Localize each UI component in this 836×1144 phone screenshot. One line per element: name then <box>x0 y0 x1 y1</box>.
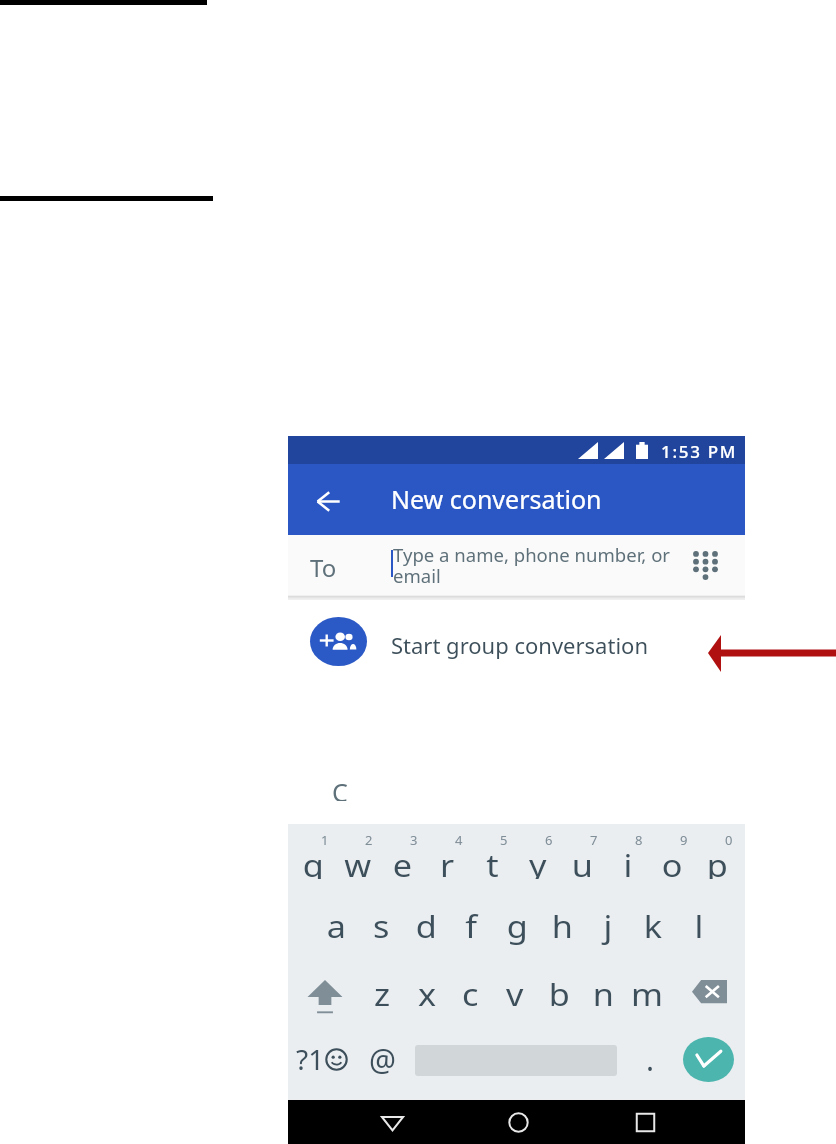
staticText: c <box>462 974 479 1015</box>
button[interactable]: ?1 <box>296 1028 356 1090</box>
button[interactable]: Dialpad <box>684 544 727 587</box>
button[interactable]: x <box>404 961 449 1027</box>
staticText: v <box>506 974 524 1015</box>
button[interactable]: h <box>540 893 585 959</box>
staticText: New conversation <box>391 482 602 516</box>
button[interactable]: 6 <box>515 828 560 890</box>
button[interactable]: @ <box>362 1028 402 1090</box>
staticText: 5 <box>500 831 508 849</box>
button[interactable]: Recents <box>629 1106 661 1138</box>
button[interactable]: c <box>448 961 493 1027</box>
staticText: g <box>507 906 528 947</box>
button[interactable]: s <box>359 893 404 959</box>
button[interactable]: 0 <box>695 828 740 890</box>
button[interactable]: 1 <box>291 828 336 890</box>
staticText: 1 <box>321 831 329 849</box>
button[interactable]: 9 <box>650 828 695 890</box>
button[interactable]: b <box>537 961 582 1027</box>
staticText: n <box>593 974 614 1015</box>
button[interactable]: Backspace <box>666 961 738 1027</box>
staticText: 3 <box>410 831 418 849</box>
staticText: o <box>662 845 683 879</box>
button[interactable]: l <box>676 893 721 959</box>
staticText: a <box>327 906 346 947</box>
button[interactable]: j <box>585 893 630 959</box>
staticText: d <box>416 906 437 947</box>
staticText: C <box>332 775 348 801</box>
staticText: 1:53 PM <box>661 440 738 463</box>
button[interactable]: Start group conversation <box>288 600 745 690</box>
staticText: To <box>310 551 337 584</box>
staticText: h <box>552 906 573 947</box>
staticText: 4 <box>455 831 463 849</box>
staticText: Start group conversation <box>391 630 648 660</box>
staticText: w <box>344 845 372 879</box>
button[interactable]: z <box>360 961 405 1027</box>
staticText: z <box>374 974 391 1015</box>
button[interactable]: d <box>404 893 449 959</box>
staticText: q <box>303 845 324 879</box>
staticText: 7 <box>590 831 598 849</box>
staticText: i <box>623 845 632 879</box>
staticText: t <box>486 845 499 879</box>
staticText: @ <box>369 1039 396 1080</box>
staticText: b <box>549 974 570 1015</box>
staticText: 8 <box>635 831 643 849</box>
button[interactable]: Enter <box>683 1037 734 1082</box>
button[interactable]: m <box>625 961 670 1027</box>
button[interactable]: f <box>449 893 494 959</box>
button[interactable]: 7 <box>560 828 605 890</box>
button[interactable]: Home <box>502 1106 534 1138</box>
button[interactable]: 2 <box>335 828 380 890</box>
button[interactable]: v <box>492 961 537 1027</box>
staticText: y <box>529 845 547 879</box>
button[interactable]: k <box>631 893 676 959</box>
button[interactable]: Back <box>296 471 352 527</box>
staticText: . <box>646 1039 655 1080</box>
staticText: j <box>603 906 612 947</box>
button[interactable]: a <box>314 893 359 959</box>
staticText: e <box>393 845 412 879</box>
staticText: 0 <box>725 831 733 849</box>
staticText: ?1 <box>296 1040 325 1078</box>
button[interactable]: Back <box>376 1106 408 1138</box>
staticText: Type a name, phone number, or email <box>393 543 681 588</box>
button[interactable]: 4 <box>425 828 470 890</box>
button[interactable]: 8 <box>605 828 650 890</box>
staticText: u <box>572 845 593 879</box>
button[interactable]: n <box>581 961 626 1027</box>
staticText: r <box>440 845 455 879</box>
button[interactable]: g <box>495 893 540 959</box>
staticText: p <box>707 845 728 879</box>
staticText: m <box>631 974 664 1015</box>
button[interactable]: 5 <box>470 828 515 890</box>
staticText: f <box>465 906 478 947</box>
staticText: l <box>694 906 703 947</box>
button[interactable]: 3 <box>380 828 425 890</box>
staticText: x <box>418 974 436 1015</box>
button[interactable]: Shift <box>290 961 374 1027</box>
staticText: 2 <box>365 831 373 849</box>
button[interactable]: . <box>632 1028 668 1090</box>
staticText: 9 <box>680 831 688 849</box>
staticText: 6 <box>545 831 553 849</box>
staticText: s <box>373 906 390 947</box>
staticText: k <box>644 906 663 947</box>
